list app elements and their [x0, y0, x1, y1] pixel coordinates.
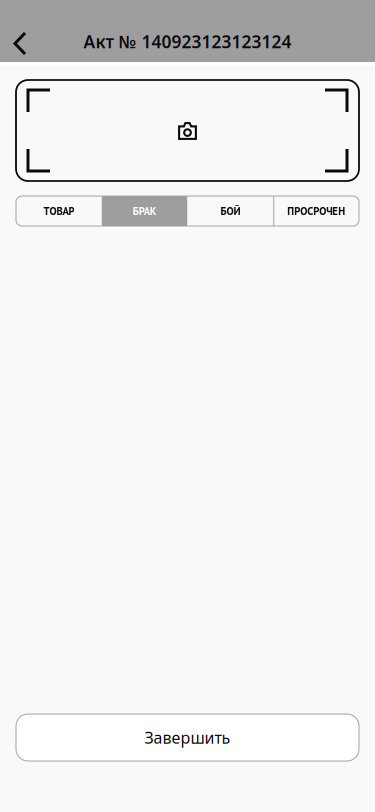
button[interactable]: Назад [0, 25, 40, 57]
button[interactable]: ТОВАР [16, 196, 102, 226]
staticText: БРАК [133, 204, 157, 218]
staticText: БОЙ [220, 204, 240, 218]
button[interactable]: БРАК [102, 196, 188, 226]
button[interactable]: БОЙ [187, 196, 273, 226]
staticText: ПРОСРОЧЕН [287, 204, 345, 218]
staticText: Завершить [144, 727, 230, 748]
staticText: ТОВАР [43, 204, 74, 218]
button[interactable]: ПРОСРОЧЕН [273, 196, 359, 226]
button[interactable]: Завершить [16, 714, 359, 761]
staticText: Акт № 140923123123124 [83, 30, 291, 53]
